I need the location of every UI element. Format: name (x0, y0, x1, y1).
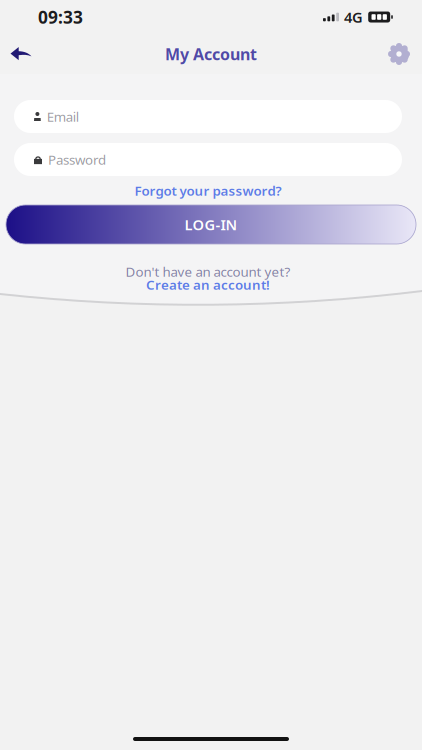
button[interactable]: Don't have an account yet? (125, 266, 290, 290)
button[interactable]: Password (14, 143, 402, 176)
button[interactable]: Email (14, 100, 402, 133)
button[interactable]: Settings (378, 34, 420, 74)
staticText: Forgot your password? (134, 182, 281, 199)
button[interactable]: Back (0, 34, 42, 74)
button[interactable]: Forgot your password? (134, 184, 281, 197)
staticText: 4G (344, 7, 363, 27)
staticText: Create an account! (146, 276, 270, 293)
button[interactable]: LOG-IN (6, 205, 416, 244)
staticText: My Account (165, 43, 257, 65)
staticText: Don't have an account yet? (125, 263, 290, 280)
staticText: LOG-IN (184, 215, 237, 234)
staticText: 09:33 (38, 5, 83, 28)
staticText: Email (47, 108, 79, 125)
staticText: Password (48, 151, 106, 168)
